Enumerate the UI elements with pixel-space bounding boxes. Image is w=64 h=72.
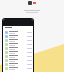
button[interactable] [3,58,33,62]
button[interactable] [3,46,33,50]
button[interactable] [3,38,33,42]
button[interactable] [3,34,33,38]
button[interactable] [3,50,33,54]
button[interactable] [3,62,33,66]
button[interactable] [3,66,33,70]
button[interactable] [3,30,33,34]
button[interactable] [3,42,33,46]
button[interactable] [3,54,33,58]
